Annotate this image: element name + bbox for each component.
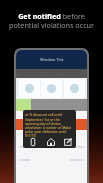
staticText: Window Tint [40,57,64,62]
button[interactable] [41,79,62,98]
button[interactable]: Log Drill [62,138,73,146]
other: Find Service [47,138,55,146]
button[interactable] [64,79,85,98]
button[interactable]: Find Service [43,138,59,146]
other: Log Drill [64,138,72,146]
button[interactable]: My Vehicle [26,138,40,146]
button[interactable] [19,79,40,98]
other: My Vehicle [29,138,37,146]
staticText: Get notified before potential violations… [4,11,99,30]
staticText: at % discount call until September 1st o… [25,112,74,138]
